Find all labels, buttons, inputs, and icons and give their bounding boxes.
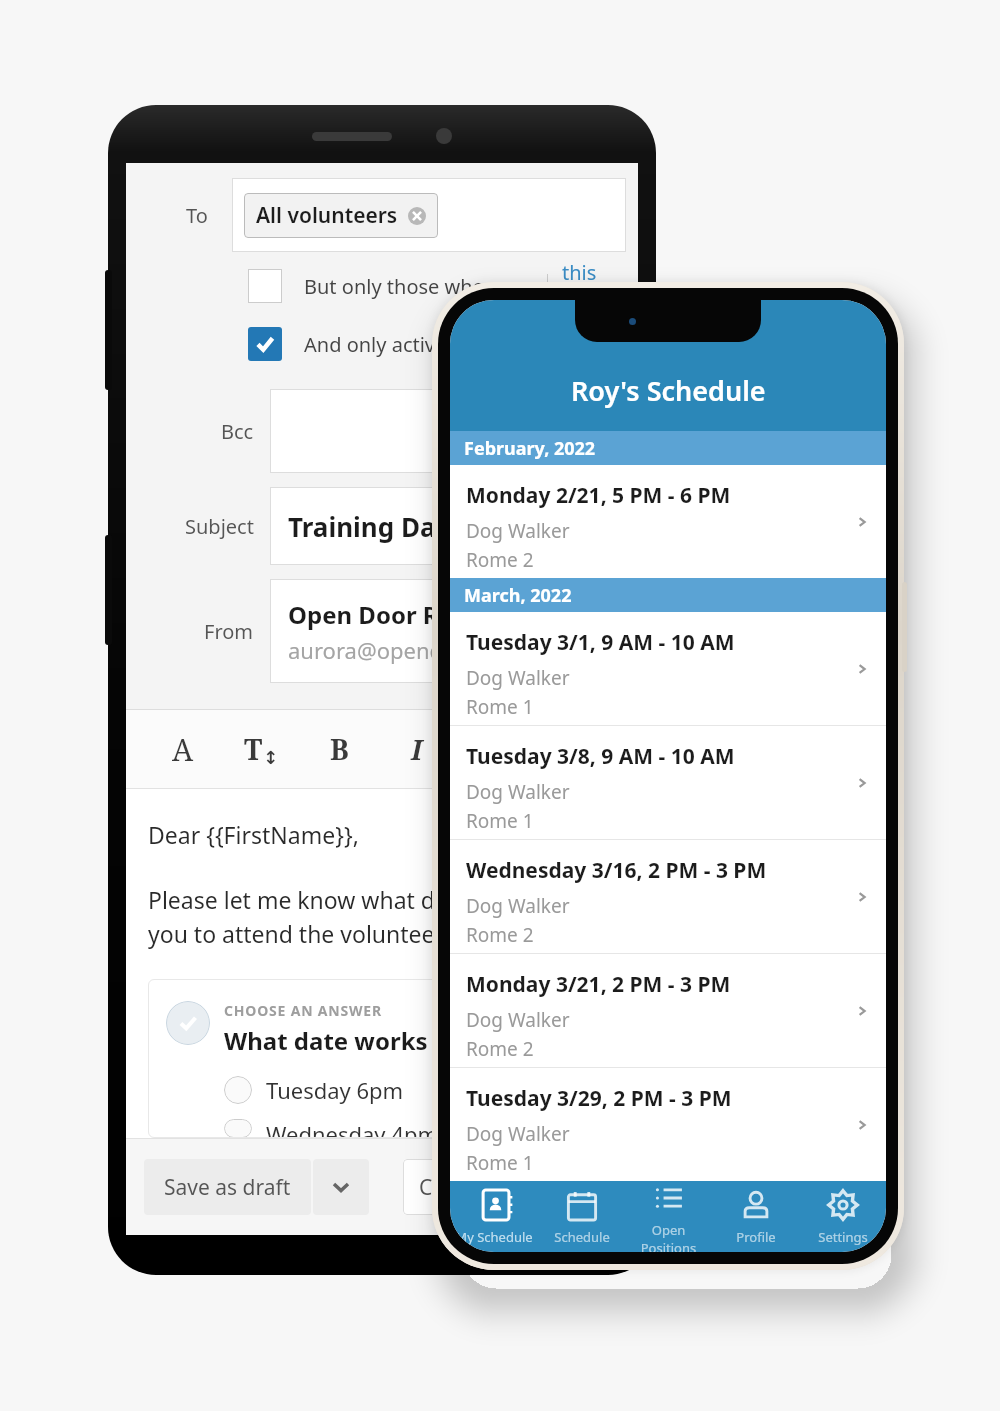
staticText: Monday 3/21, 2 PM - 3 PM xyxy=(466,970,731,999)
staticText: Wednesday 3/16, 2 PM - 3 PM xyxy=(466,856,767,885)
staticText: Wednesday 4pm xyxy=(266,1119,438,1138)
staticText: Settings xyxy=(818,1228,868,1246)
button[interactable]: Ca xyxy=(403,1159,493,1215)
button[interactable]: More draft options xyxy=(313,1159,369,1215)
button[interactable]: Tuesday 6pm xyxy=(224,1075,404,1105)
staticText: Tuesday 3/29, 2 PM - 3 PM xyxy=(466,1084,732,1113)
staticText: Dear {{FirstName}}, xyxy=(148,819,359,850)
button[interactable]: Open Positions xyxy=(625,1181,712,1252)
staticText: Open Positions xyxy=(625,1221,712,1252)
staticText: U xyxy=(485,730,506,768)
button[interactable]: A xyxy=(144,710,222,788)
button[interactable]: Tuesday 3/1, 9 AM - 10 AM xyxy=(450,612,886,725)
button[interactable]: Schedule xyxy=(538,1181,625,1252)
staticText: Monday 2/21, 5 PM - 6 PM xyxy=(466,481,731,510)
button[interactable]: And only active volunteers xyxy=(126,315,638,373)
button[interactable]: But only those who pass xyxy=(126,257,638,315)
button[interactable]: I xyxy=(378,710,456,788)
staticText: March, 2022 xyxy=(464,583,572,608)
button[interactable]: Tuesday 3/8, 9 AM - 10 AM xyxy=(450,726,886,839)
staticText: Rome 2 xyxy=(466,547,534,573)
staticText: Open Door Ranch xyxy=(288,598,497,631)
staticText: February, 2022 xyxy=(464,436,596,461)
staticText: Rome 1 xyxy=(466,1150,534,1176)
button[interactable]: Wednesday 3/16, 2 PM - 3 PM xyxy=(450,840,886,953)
staticText: To xyxy=(186,202,208,229)
staticText: Dog Walker xyxy=(466,518,570,544)
button[interactable]: Save as draft xyxy=(144,1159,311,1215)
staticText: A xyxy=(562,730,584,768)
button[interactable]: All volunteers xyxy=(244,193,438,238)
staticText: I xyxy=(411,730,423,768)
button[interactable]: Monday 2/21, 5 PM - 6 PM xyxy=(450,465,886,578)
staticText: Dog Walker xyxy=(466,893,570,919)
staticText: And only active volunteers xyxy=(304,331,552,358)
staticText: Ca xyxy=(419,1173,445,1202)
staticText: Dog Walker xyxy=(466,779,570,805)
button[interactable]: T xyxy=(222,710,300,788)
staticText: Training Dates xyxy=(288,509,476,544)
staticText: Tuesday 3/8, 9 AM - 10 AM xyxy=(466,742,735,771)
button[interactable]: Settings xyxy=(799,1181,886,1252)
staticText: Schedule xyxy=(554,1228,610,1246)
button[interactable]: Wednesday 4pm xyxy=(224,1119,438,1138)
staticText: Dog Walker xyxy=(466,1121,570,1147)
button[interactable]: B xyxy=(300,710,378,788)
button[interactable]: Tuesday 3/29, 2 PM - 3 PM xyxy=(450,1068,886,1181)
staticText: Profile xyxy=(736,1228,776,1246)
staticText: My Schedule xyxy=(455,1228,533,1246)
button[interactable]: My Schedule xyxy=(450,1181,538,1252)
button[interactable]: U xyxy=(456,710,534,788)
staticText: aurora@opendoorranch.org xyxy=(288,635,580,665)
button[interactable]: Monday 3/21, 2 PM - 3 PM xyxy=(450,954,886,1067)
staticText: Dog Walker xyxy=(466,665,570,691)
staticText: B xyxy=(330,730,349,768)
staticText: Roy's Schedule xyxy=(571,372,766,409)
staticText: Rome 1 xyxy=(466,808,534,834)
staticText: Rome 2 xyxy=(466,1036,534,1062)
staticText: All volunteers xyxy=(256,201,398,230)
button[interactable]: A xyxy=(534,710,612,788)
staticText: Rome 1 xyxy=(466,694,534,720)
staticText: Subject xyxy=(185,513,254,540)
staticText: T xyxy=(244,730,263,768)
staticText: What date works best? xyxy=(224,1024,498,1057)
staticText: Tuesday 3/1, 9 AM - 10 AM xyxy=(466,628,735,657)
staticText: Rome 2 xyxy=(466,922,534,948)
staticText: this filter... xyxy=(562,259,638,313)
staticText: Save as draft xyxy=(164,1173,291,1202)
staticText: From xyxy=(204,618,254,645)
staticText: Tuesday 6pm xyxy=(266,1075,404,1105)
staticText: Dog Walker xyxy=(466,1007,570,1033)
button[interactable]: Profile xyxy=(712,1181,799,1252)
staticText: Please let me know what dates work for y… xyxy=(148,884,578,949)
staticText: CHOOSE AN ANSWER xyxy=(224,1001,382,1020)
staticText: ↕ xyxy=(263,747,279,768)
staticText: A xyxy=(172,729,194,770)
staticText: Bcc xyxy=(221,418,254,445)
staticText: But only those who pass xyxy=(304,273,533,300)
